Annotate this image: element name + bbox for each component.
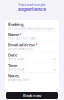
staticText: Fast and simple	[18, 2, 45, 7]
staticText: *	[35, 42, 37, 47]
button[interactable]: Time	[5, 62, 59, 72]
staticText: Enter your full name	[8, 37, 36, 40]
staticText: Time	[8, 63, 17, 68]
staticText: Book now	[23, 93, 41, 98]
staticText: Tell us a little about your project	[8, 27, 54, 30]
staticText: Email address	[8, 42, 35, 47]
staticText: Notes	[8, 73, 19, 78]
button[interactable]: Date	[5, 52, 59, 62]
staticText: Booking	[8, 22, 24, 27]
button[interactable]: Email address	[5, 42, 59, 52]
staticText: you@company.com	[8, 47, 32, 50]
staticText: Date	[8, 52, 17, 58]
button[interactable]: Book now	[6, 92, 58, 99]
staticText: Anything else?	[8, 78, 29, 82]
staticText: Select a time	[8, 68, 25, 71]
staticText: Select a date	[8, 57, 25, 61]
button[interactable]: Name	[5, 31, 59, 41]
staticText: experience	[18, 5, 46, 12]
staticText: *	[19, 32, 21, 37]
staticText: Name	[8, 32, 19, 37]
button[interactable]: Notes	[5, 73, 59, 83]
